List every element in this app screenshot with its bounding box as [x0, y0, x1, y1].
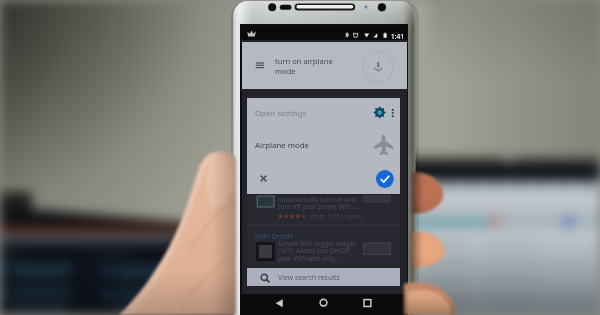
staticText: from 1,551 users [311, 212, 362, 221]
staticText: WiFi OnOff [255, 231, 293, 241]
button[interactable]: Open settings [247, 98, 400, 194]
staticText: Open settings [255, 108, 307, 119]
button[interactable]: View search results [247, 268, 400, 286]
staticText: 1:41 [391, 32, 405, 41]
staticText: automatically turn on and turn off your … [278, 195, 359, 211]
button[interactable]: automatically turn on and turn off your … [247, 196, 400, 267]
staticText: turn on airplane mode [275, 56, 333, 76]
staticText: Airplane mode [255, 140, 309, 151]
staticText: Simple WiFi toggle widget (1x1). Allows … [278, 239, 356, 263]
staticText: View search results [278, 273, 340, 282]
button[interactable]: turn on airplane mode [242, 42, 407, 89]
